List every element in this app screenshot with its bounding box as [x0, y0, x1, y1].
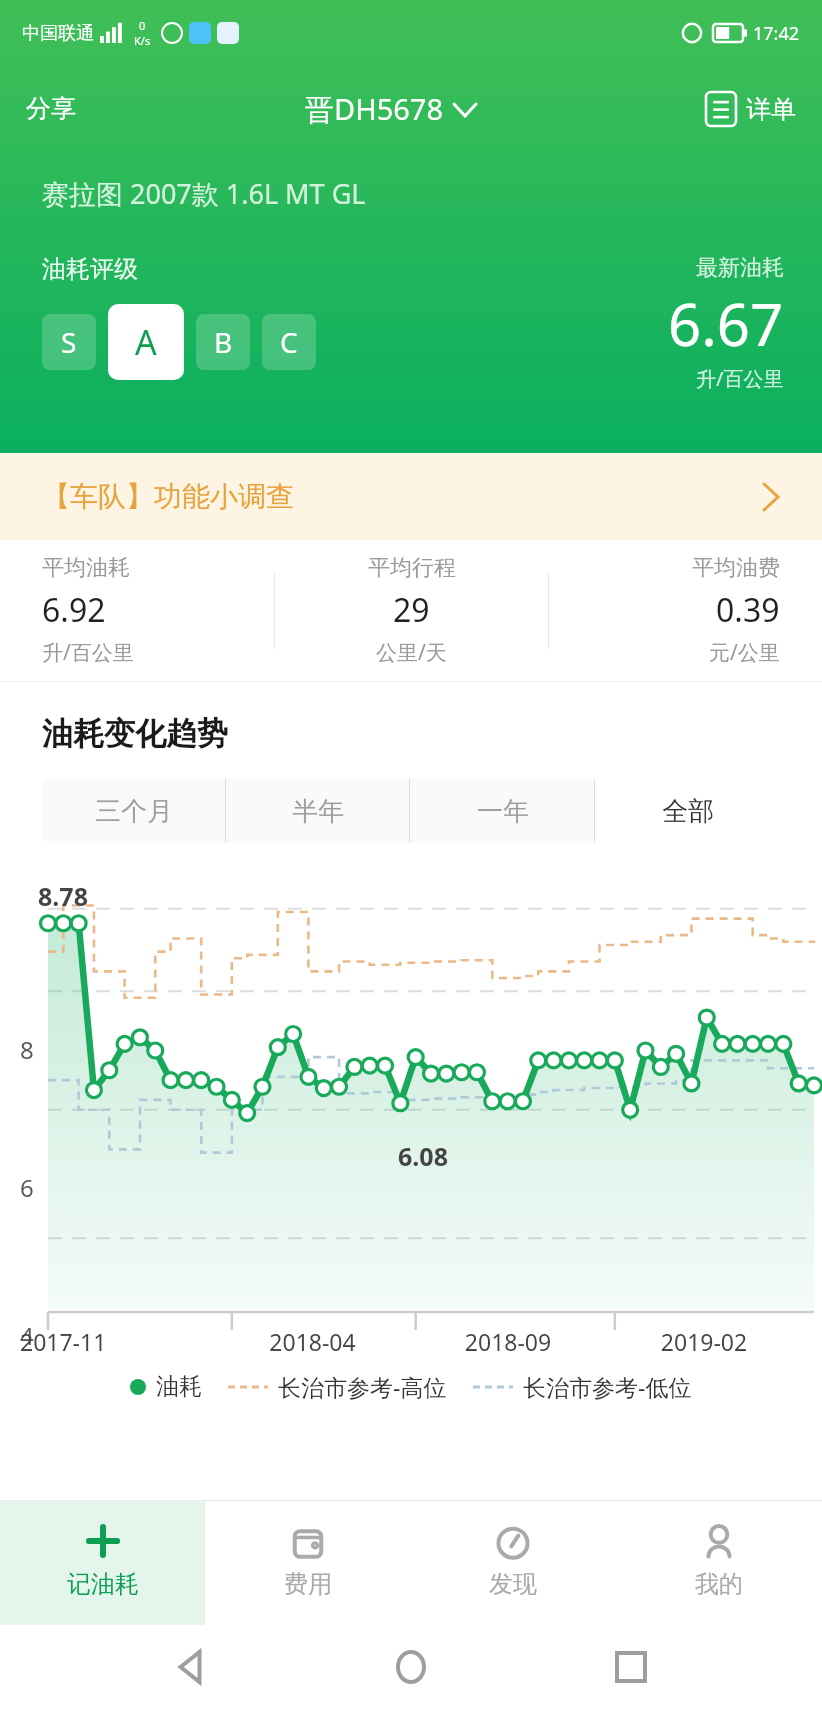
staticText: 我的 [695, 1569, 743, 1599]
button[interactable]: 分享 [22, 89, 80, 128]
staticText: 油耗变化趋势 [42, 714, 228, 753]
button[interactable]: 我的 [616, 1501, 822, 1625]
staticText: 平均油耗 [42, 554, 130, 582]
staticText: A [135, 319, 157, 365]
staticText: S [61, 323, 77, 361]
staticText: 6.67 [668, 284, 784, 363]
staticText: 最新油耗 [696, 254, 784, 282]
staticText: 晋DH5678 [305, 89, 444, 129]
staticText: 【车队】功能小调查 [42, 479, 294, 514]
staticText: 油耗评级 [42, 254, 138, 284]
button[interactable]: 半年 [226, 779, 410, 843]
staticText: 全部 [662, 795, 714, 828]
staticText: 17:42 [753, 21, 800, 46]
staticText: 0 [139, 18, 146, 33]
button[interactable]: S [42, 314, 96, 370]
staticText: 长治市参考-低位 [523, 1371, 692, 1402]
staticText: 0.39 [716, 588, 780, 632]
button[interactable]: 全部 [595, 779, 780, 843]
staticText: 一年 [477, 795, 529, 828]
button[interactable]: A [108, 304, 184, 380]
button[interactable]: 一年 [410, 779, 595, 843]
button[interactable]: 费用 [205, 1501, 410, 1625]
button[interactable]: C [262, 314, 316, 370]
staticText: 8.78 [38, 879, 88, 913]
staticText: 8 [20, 1033, 34, 1066]
button[interactable]: Home [383, 1639, 439, 1695]
staticText: 元/公里 [709, 638, 780, 667]
staticText: 2019-02 [606, 1326, 802, 1357]
staticText: 半年 [292, 795, 344, 828]
staticText: 三个月 [95, 795, 173, 828]
staticText: 长治市参考-高位 [278, 1371, 447, 1402]
button[interactable]: 发现 [410, 1501, 616, 1625]
button[interactable]: 记油耗 [0, 1501, 205, 1625]
staticText: 赛拉图 2007款 1.6L MT GL [42, 175, 366, 212]
staticText: 2018-04 [215, 1326, 410, 1357]
button[interactable]: Back [164, 1639, 220, 1695]
staticText: 2017-11 [20, 1326, 215, 1357]
staticText: K/s [134, 33, 151, 48]
staticText: 油耗 [156, 1372, 202, 1401]
staticText: 平均油费 [692, 554, 780, 582]
button[interactable]: 【车队】功能小调查 [0, 453, 822, 540]
staticText: 详单 [746, 94, 796, 125]
staticText: 29 [393, 588, 430, 632]
staticText: 费用 [284, 1569, 332, 1599]
staticText: 公里/天 [376, 638, 447, 667]
button[interactable]: Recents [603, 1639, 659, 1695]
staticText: C [280, 323, 298, 361]
staticText: 平均行程 [368, 554, 456, 582]
staticText: 记油耗 [67, 1569, 139, 1599]
button[interactable]: B [196, 314, 250, 370]
staticText: B [214, 323, 233, 361]
button[interactable]: 三个月 [42, 779, 226, 843]
staticText: 中国联通 [22, 22, 94, 45]
staticText: 升/百公里 [42, 638, 134, 667]
staticText: 6.92 [42, 588, 106, 632]
staticText: 发现 [489, 1569, 537, 1599]
button[interactable]: 晋DH5678 [301, 85, 480, 133]
staticText: 分享 [26, 93, 76, 124]
staticText: 升/百公里 [696, 365, 784, 392]
staticText: 4 [20, 1319, 34, 1352]
button[interactable]: 详单 [702, 88, 800, 130]
staticText: 6 [20, 1171, 34, 1204]
staticText: 6.08 [398, 1139, 448, 1173]
staticText: 2018-09 [410, 1326, 606, 1357]
